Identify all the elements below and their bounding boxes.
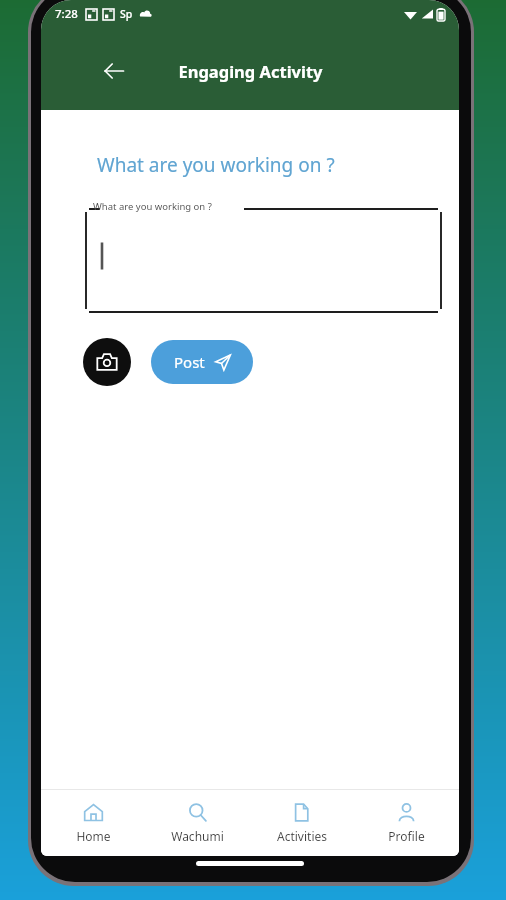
button[interactable]: Activities — [249, 796, 354, 850]
button[interactable]: Back — [97, 54, 131, 88]
staticText: Profile — [388, 828, 425, 844]
staticText: Activities — [277, 828, 327, 844]
button[interactable]: Take photo — [83, 338, 131, 386]
button[interactable]: What are you working on ? — [86, 200, 441, 312]
staticText: Wachumi — [171, 828, 224, 844]
staticText: Sp — [120, 7, 133, 21]
button[interactable]: Home — [41, 796, 145, 850]
staticText: What are you working on ? — [97, 152, 335, 178]
staticText: 7:28 — [55, 6, 78, 22]
button[interactable]: Wachumi — [145, 796, 249, 850]
button[interactable]: Profile — [354, 796, 459, 850]
staticText: Post — [174, 352, 205, 372]
staticText: Engaging Activity — [178, 60, 323, 82]
staticText: Home — [76, 828, 111, 844]
button[interactable]: Post — [151, 340, 253, 384]
staticText: What are you working on ? — [93, 200, 212, 213]
